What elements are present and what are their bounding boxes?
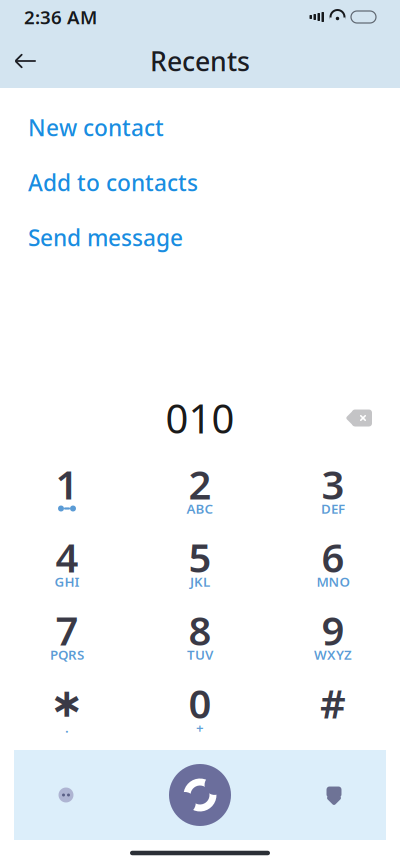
staticText: 5 (188, 530, 211, 583)
button[interactable]: 6 (266, 527, 399, 600)
button[interactable]: ∗ (0, 673, 133, 746)
staticText: New contact (28, 112, 164, 142)
button[interactable]: 7 (0, 600, 133, 673)
button[interactable]: 9 (266, 600, 399, 673)
staticText: Recents (150, 43, 250, 79)
staticText: 6 (321, 530, 344, 583)
staticText: PQRS (50, 646, 84, 663)
staticText: Add to contacts (28, 167, 198, 197)
staticText: TUV (187, 646, 213, 663)
staticText: ABC (186, 500, 213, 517)
staticText: GHI (54, 573, 79, 590)
staticText: JKL (190, 573, 210, 590)
button[interactable]: # (266, 673, 399, 746)
staticText: 010 (165, 391, 234, 444)
button[interactable]: Favorites (306, 767, 362, 823)
button[interactable]: Back (0, 35, 52, 87)
staticText: 2 (188, 457, 211, 510)
staticText: 1 (55, 457, 78, 510)
staticText: # (320, 676, 346, 729)
button[interactable]: 1 (0, 454, 133, 527)
staticText: 4 (55, 530, 78, 583)
button[interactable]: More options (38, 767, 94, 823)
button[interactable]: Add to contacts (0, 155, 400, 210)
button[interactable]: Call (165, 760, 235, 830)
staticText: ∗ (50, 680, 84, 726)
staticText: 2:36 AM (24, 5, 97, 29)
staticText: MNO (316, 573, 349, 590)
staticText: 8 (188, 603, 211, 656)
button[interactable]: 3 (266, 454, 399, 527)
button[interactable]: 0 (133, 673, 266, 746)
staticText: 9 (321, 603, 344, 656)
staticText: DEF (321, 500, 345, 517)
button[interactable]: 8 (133, 600, 266, 673)
button[interactable]: 2 (133, 454, 266, 527)
button[interactable]: New contact (0, 100, 400, 155)
button[interactable]: Send message (0, 210, 400, 265)
button[interactable]: 5 (133, 527, 266, 600)
staticText: 3 (321, 457, 344, 510)
button[interactable]: 4 (0, 527, 133, 600)
staticText: 7 (55, 603, 78, 656)
staticText: + (196, 719, 204, 736)
button[interactable]: Delete (334, 396, 386, 440)
staticText: . (65, 719, 69, 736)
staticText: WXYZ (314, 646, 352, 663)
staticText: 0 (188, 676, 211, 729)
staticText: Send message (28, 222, 183, 252)
